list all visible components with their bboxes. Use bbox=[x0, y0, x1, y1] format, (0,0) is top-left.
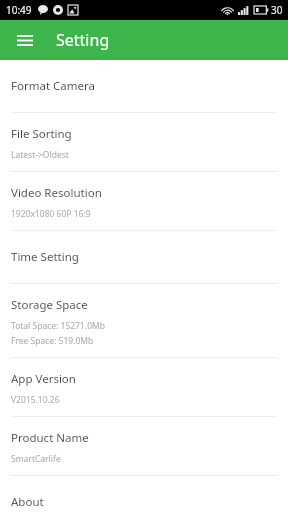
button[interactable]: Open navigation menu bbox=[11, 26, 39, 54]
staticText: File Sorting bbox=[11, 126, 72, 142]
staticText: 30 bbox=[271, 3, 283, 17]
staticText: Setting bbox=[56, 29, 110, 51]
staticText: SmartCarlife bbox=[11, 453, 61, 465]
staticText: 10:49 bbox=[6, 3, 32, 17]
button[interactable]: Storage Space bbox=[0, 284, 288, 357]
button[interactable]: About bbox=[0, 476, 288, 512]
staticText: App Version bbox=[11, 371, 76, 387]
staticText: Total Space: 15271.0Mb bbox=[11, 320, 105, 332]
staticText: V2015.10.26 bbox=[11, 394, 60, 406]
button[interactable]: App Version bbox=[0, 358, 288, 416]
staticText: Video Resolution bbox=[11, 185, 102, 201]
staticText: Product Name bbox=[11, 430, 89, 446]
staticText: 1920x1080 60P 16:9 bbox=[11, 208, 91, 220]
staticText: Time Setting bbox=[11, 249, 79, 265]
staticText: Storage Space bbox=[11, 297, 88, 313]
button[interactable]: Video Resolution bbox=[0, 172, 288, 230]
staticText: About bbox=[11, 494, 44, 510]
staticText: Latest->Oldest bbox=[11, 149, 69, 161]
staticText: Free Space: 519.0Mb bbox=[11, 335, 94, 347]
button[interactable]: Product Name bbox=[0, 417, 288, 475]
button[interactable]: Format Camera bbox=[0, 60, 288, 112]
staticText: Format Camera bbox=[11, 78, 95, 94]
button[interactable]: File Sorting bbox=[0, 113, 288, 171]
button[interactable]: Time Setting bbox=[0, 231, 288, 283]
